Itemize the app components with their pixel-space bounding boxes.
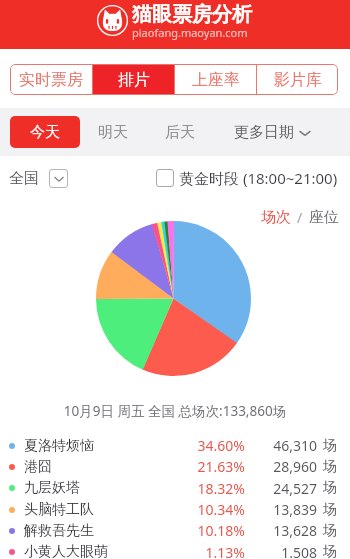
button[interactable]: 影片库 [257, 64, 338, 95]
staticText: 明天 [98, 123, 128, 142]
staticText: 黄金时段 (18:00~21:00) [179, 168, 338, 188]
staticText: / [297, 208, 303, 227]
staticText: 13,628 [269, 521, 317, 540]
button[interactable]: 更多日期 [234, 123, 311, 142]
staticText: 10月9日 周五 全国 总场次:133,860场 [0, 402, 350, 420]
staticText: 夏洛特烦恼 [24, 437, 94, 455]
staticText: 后天 [165, 123, 195, 142]
staticText: 更多日期 [234, 123, 294, 142]
staticText: 场 [323, 479, 337, 497]
staticText: piaofang.maoyan.com [132, 25, 248, 40]
button[interactable]: 解救吾先生 [0, 520, 350, 541]
staticText: 头脑特工队 [24, 501, 94, 519]
button[interactable]: 夏洛特烦恼 [0, 435, 350, 456]
staticText: 实时票房 [19, 70, 83, 90]
staticText: 21.63% [191, 457, 245, 476]
button[interactable]: 座位 [309, 208, 339, 227]
staticText: 18.32% [191, 479, 245, 498]
staticText: 24,527 [269, 479, 317, 498]
button[interactable]: 全国 [9, 169, 68, 188]
staticText: 场 [323, 501, 337, 519]
staticText: 全国 [9, 169, 39, 188]
staticText: 34.60% [191, 436, 245, 455]
button[interactable]: 排片 [93, 64, 174, 95]
staticText: 1.13% [191, 543, 245, 559]
staticText: 解救吾先生 [24, 522, 94, 540]
staticText: 今天 [30, 123, 60, 142]
staticText: 10.18% [191, 521, 245, 540]
staticText: 1.508 [269, 543, 317, 559]
staticText: 场 [323, 522, 337, 540]
button[interactable]: 实时票房 [10, 64, 92, 95]
button[interactable]: 今天 [10, 116, 80, 148]
button[interactable]: 后天 [165, 123, 195, 142]
button[interactable]: 小黄人大眼萌 [0, 541, 350, 559]
staticText: 小黄人大眼萌 [24, 543, 108, 559]
staticText: 座位 [309, 208, 339, 227]
staticText: 场 [323, 458, 337, 476]
staticText: 10.34% [191, 500, 245, 519]
staticText: 场次 [261, 208, 291, 227]
staticText: 13,839 [269, 500, 317, 519]
button[interactable]: 明天 [98, 123, 128, 142]
staticText: 上座率 [192, 70, 240, 90]
button[interactable]: 九层妖塔 [0, 477, 350, 499]
staticText: 港囧 [24, 458, 52, 476]
staticText: 场 [323, 437, 337, 455]
button[interactable]: 黄金时段 (18:00~21:00) [156, 168, 338, 188]
staticText: 28,960 [269, 457, 317, 476]
staticText: 猫眼票房分析 [132, 2, 252, 27]
staticText: 排片 [118, 70, 150, 90]
staticText: 46,310 [269, 436, 317, 455]
button[interactable]: 头脑特工队 [0, 499, 350, 520]
button[interactable]: 港囧 [0, 456, 350, 477]
button[interactable]: 场次 [261, 208, 291, 227]
staticText: 九层妖塔 [24, 479, 80, 497]
staticText: 影片库 [274, 70, 322, 90]
button[interactable]: 上座率 [175, 64, 256, 95]
staticText: 场 [323, 543, 337, 559]
